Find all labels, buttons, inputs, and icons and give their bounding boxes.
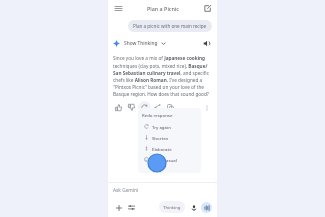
staticText: Show Thinking [124, 40, 158, 47]
button[interactable]: Thinking [159, 201, 185, 213]
button[interactable]: Elaborate [142, 143, 198, 154]
staticText: Shorten [152, 135, 169, 141]
button[interactable]: More options [201, 102, 213, 114]
staticText: Try again [152, 124, 171, 130]
staticText: Plan a picnic with one main recipe [133, 23, 207, 29]
button[interactable]: Add [113, 202, 124, 213]
button[interactable]: Share [151, 101, 164, 114]
staticText: More casual [152, 157, 177, 163]
button[interactable]: Show Thinking [123, 39, 167, 48]
staticText: Elaborate [152, 146, 172, 152]
button[interactable]: Live voice [201, 202, 212, 213]
staticText: Since you love a mix of Japanese cooking… [113, 55, 212, 97]
staticText: Ask Gemini [113, 187, 139, 194]
button[interactable]: Try again [142, 121, 198, 132]
staticText: Thinking [163, 204, 181, 210]
button[interactable]: New chat [201, 2, 213, 14]
staticText: Plan a Picnic [147, 5, 179, 12]
other: Tap indicator [148, 154, 166, 172]
button[interactable]: Voice input [188, 202, 199, 213]
button[interactable]: More casual [142, 154, 198, 165]
button[interactable]: Ask Gemini [113, 187, 212, 194]
button[interactable]: Menu [112, 2, 124, 14]
button[interactable]: Like [112, 101, 125, 114]
staticText: Redo response [142, 112, 173, 118]
button[interactable]: Regenerate [138, 101, 151, 114]
button[interactable]: Read aloud [201, 38, 212, 49]
button[interactable]: Tools [126, 202, 137, 213]
button[interactable]: Plan a picnic with one main recipe [128, 20, 212, 32]
button[interactable]: Copy [164, 101, 177, 114]
button[interactable]: Dislike [125, 101, 138, 114]
button[interactable]: Shorten [142, 132, 198, 143]
